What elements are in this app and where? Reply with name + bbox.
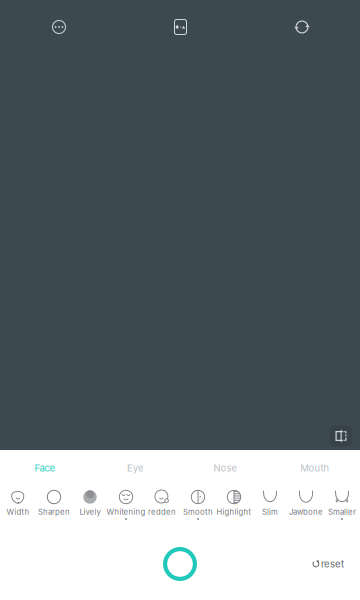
button[interactable]: Compare original — [330, 425, 352, 447]
button[interactable]: Smooth — [180, 490, 216, 522]
button[interactable]: Slim — [252, 490, 288, 522]
staticText: Width — [6, 507, 29, 517]
button[interactable]: Jawbone — [288, 490, 324, 522]
button[interactable]: Width — [0, 490, 36, 522]
button[interactable]: Apply — [156, 540, 204, 588]
button[interactable]: Sharpen — [36, 490, 72, 522]
button[interactable]: Whitening — [108, 490, 144, 522]
staticText: Mouth — [300, 462, 329, 474]
staticText: Jawbone — [289, 507, 323, 517]
staticText: Slim — [262, 507, 278, 517]
staticText: Eye — [127, 462, 143, 474]
button[interactable]: Eye — [90, 450, 180, 482]
staticText: Lively — [79, 507, 100, 517]
button[interactable]: Smaller — [324, 490, 360, 522]
button[interactable]: Mouth — [270, 450, 360, 482]
button[interactable]: Face — [0, 450, 90, 482]
button[interactable]: Highlight — [216, 490, 252, 522]
button[interactable]: Lively — [72, 490, 108, 522]
staticText: Nose — [213, 462, 236, 474]
staticText: Smaller — [328, 507, 356, 517]
button[interactable]: More options — [47, 15, 71, 39]
staticText: Whitening — [106, 507, 145, 517]
button[interactable]: redden — [144, 490, 180, 522]
staticText: Face — [34, 462, 55, 474]
button[interactable]: Templates — [168, 15, 192, 39]
staticText: Highlight — [216, 507, 251, 517]
staticText: Smooth — [183, 507, 213, 517]
button[interactable]: Rotate — [290, 15, 314, 39]
button[interactable]: Nose — [180, 450, 270, 482]
staticText: reset — [321, 558, 344, 570]
staticText: Sharpen — [38, 507, 70, 517]
button[interactable]: reset — [307, 553, 349, 575]
staticText: redden — [148, 507, 176, 517]
